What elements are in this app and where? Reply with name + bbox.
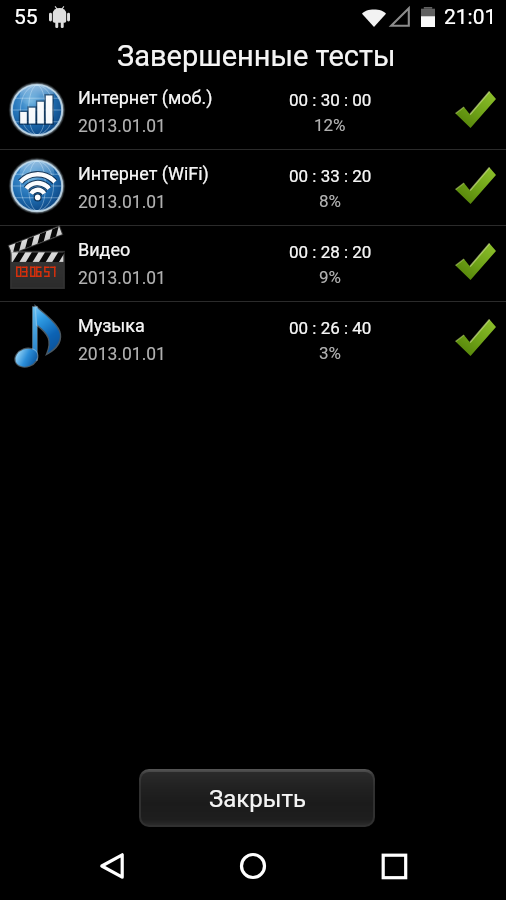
staticText: 00 : 28 : 20	[289, 242, 372, 262]
button[interactable]: Recents	[354, 831, 434, 900]
staticText: 2013.01.01	[78, 192, 166, 213]
staticText: 00 : 30 : 00	[289, 90, 372, 110]
button[interactable]: Музыка	[0, 302, 506, 377]
staticText: Музыка	[78, 315, 145, 336]
staticText: 00 : 26 : 40	[289, 318, 372, 338]
staticText: 2013.01.01	[78, 268, 166, 289]
button[interactable]: Видео	[0, 226, 506, 301]
staticText: 8%	[319, 191, 342, 211]
button[interactable]: Home	[213, 831, 293, 900]
button[interactable]: Back	[72, 831, 152, 900]
staticText: 21:01	[444, 5, 497, 30]
staticText: 55	[14, 5, 38, 30]
staticText: 9%	[319, 267, 342, 287]
staticText: Завершенные тесты	[117, 39, 396, 73]
staticText: 00 : 33 : 20	[289, 166, 372, 186]
staticText: 3%	[319, 343, 342, 363]
button[interactable]: Закрыть	[141, 772, 373, 825]
button[interactable]: Интернет (моб.)	[0, 74, 506, 149]
staticText: 12%	[314, 115, 346, 135]
staticText: Видео	[78, 239, 131, 260]
staticText: 2013.01.01	[78, 344, 166, 365]
staticText: 2013.01.01	[78, 116, 166, 137]
staticText: Интернет (моб.)	[78, 87, 213, 108]
button[interactable]: Интернет (WiFi)	[0, 150, 506, 225]
staticText: Закрыть	[209, 785, 306, 813]
staticText: Интернет (WiFi)	[78, 163, 209, 184]
